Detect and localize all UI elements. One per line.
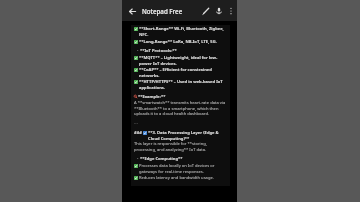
staticText: **HTTP/HTTPS** – Used in web-based IoT a… [139,79,227,90]
staticText: This layer is responsible for **storing,… [134,141,227,152]
staticText: **MQTT** – Lightweight, ideal for low-po… [139,55,227,66]
staticText: **Long-Range** LoRa, NB-IoT, LTE, 5G. [139,39,227,45]
button[interactable]: Voice input [212,4,225,17]
staticText: Processes data locally on IoT devices or… [139,163,227,174]
staticText: Notepad Free [142,7,183,15]
button[interactable]: Back [125,4,139,18]
staticText: Reduces latency and bandwidth usage. [139,175,227,181]
staticText: • [137,156,139,162]
staticText: **Short-Range** Wi-Fi, Bluetooth, Zigbee… [139,26,227,37]
staticText: **Example:** [138,94,166,100]
staticText: ### [134,130,143,136]
staticText: **IoT Protocols:** [140,48,227,54]
staticText: • [137,48,139,54]
button[interactable]: Edit note [199,4,212,17]
staticText: A **smartwatch** transmits heart-rate da… [134,100,227,116]
staticText: --- [134,120,138,126]
staticText: **CoAP** – Efficient for constrained net… [139,67,227,78]
staticText: **3. Data Processing Layer (Edge & Cloud… [148,130,227,141]
staticText: **Edge Computing** [140,156,227,162]
button[interactable]: More options [225,5,236,16]
